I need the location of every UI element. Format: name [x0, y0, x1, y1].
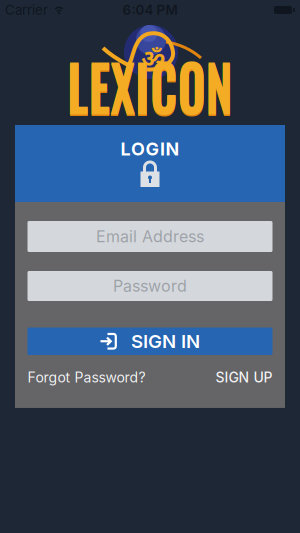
staticText: Password — [113, 276, 187, 296]
staticText: LEXICON — [50, 42, 250, 129]
staticText: Email Address — [96, 227, 204, 246]
staticText: 6:04 PM — [122, 2, 177, 18]
staticText: Carrier — [5, 2, 48, 18]
button[interactable]: Email Address — [27, 221, 272, 252]
button[interactable]: SIGN UP — [215, 369, 272, 386]
button[interactable]: SIGN IN — [27, 327, 272, 355]
staticText: LEXICON — [50, 41, 250, 128]
button[interactable]: Password — [27, 271, 272, 301]
staticText: LOGIN — [120, 138, 179, 160]
staticText: Forgot Password? — [27, 369, 145, 386]
staticText: ॐ — [141, 41, 166, 74]
staticText: SIGN UP — [215, 369, 272, 386]
button[interactable]: Forgot Password? — [27, 369, 145, 386]
staticText: SIGN IN — [131, 330, 200, 353]
